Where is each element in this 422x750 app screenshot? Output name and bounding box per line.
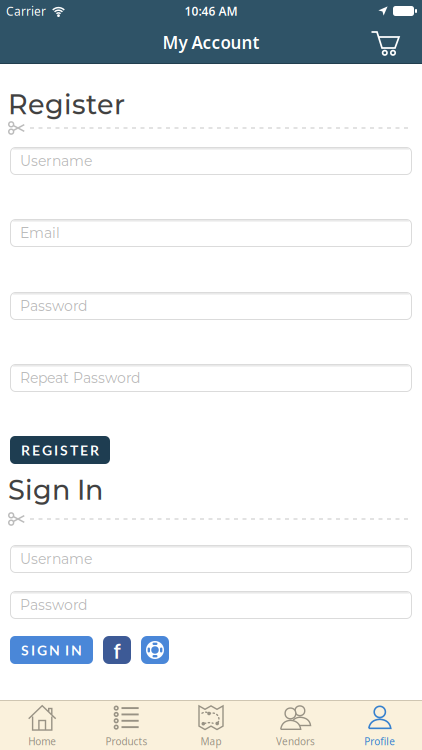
button[interactable]: Sign in with OpenID: [141, 636, 169, 664]
staticText: f: [113, 639, 120, 663]
staticText: Sign In: [8, 473, 103, 506]
button[interactable]: Profile: [338, 701, 422, 750]
button[interactable]: R E G I S T E R: [10, 436, 110, 464]
staticText: Password: [20, 596, 87, 614]
button[interactable]: Sign in with Facebook: [103, 636, 131, 664]
staticText: Map: [200, 735, 221, 748]
button[interactable]: Cart: [369, 26, 401, 58]
staticText: Profile: [364, 735, 395, 748]
staticText: My Account: [162, 31, 259, 54]
button[interactable]: Products: [84, 701, 169, 750]
staticText: 10:46 AM: [184, 3, 237, 19]
staticText: Username: [20, 152, 92, 170]
button[interactable]: Vendors: [253, 701, 338, 750]
staticText: Email: [20, 224, 60, 242]
staticText: Carrier: [6, 3, 46, 19]
staticText: Register: [8, 88, 125, 121]
staticText: Repeat Password: [20, 369, 140, 387]
staticText: S I G N I N: [21, 642, 82, 658]
staticText: Vendors: [276, 735, 315, 748]
staticText: Username: [20, 550, 92, 568]
staticText: Home: [28, 735, 56, 748]
button[interactable]: S I G N I N: [10, 636, 93, 664]
staticText: Products: [106, 735, 148, 748]
button[interactable]: Map: [169, 701, 253, 750]
button[interactable]: Home: [0, 701, 84, 750]
staticText: Password: [20, 297, 87, 315]
staticText: R E G I S T E R: [21, 442, 99, 458]
